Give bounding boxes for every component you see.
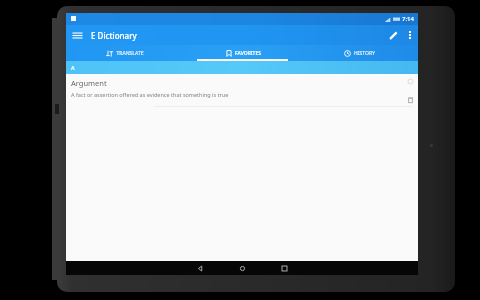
- staticText: HISTORY: [354, 50, 375, 57]
- staticText: Argument: [71, 78, 107, 88]
- staticText: A fact or assertion offered as evidence …: [71, 91, 229, 98]
- button[interactable]: HISTORY: [301, 45, 418, 61]
- button[interactable]: Recent apps: [272, 261, 296, 275]
- staticText: A: [71, 64, 75, 71]
- staticText: FAVORITES: [235, 50, 261, 57]
- staticText: 7:14: [402, 15, 414, 23]
- button[interactable]: Edit: [384, 26, 402, 44]
- button[interactable]: More options: [402, 27, 418, 43]
- button[interactable]: Back: [188, 261, 212, 275]
- button[interactable]: Argument: [66, 74, 418, 106]
- button[interactable]: Delete: [406, 95, 415, 104]
- button[interactable]: Home: [230, 261, 254, 275]
- staticText: TRANSLATE: [116, 50, 144, 57]
- staticText: E Dictionary: [91, 30, 137, 41]
- button[interactable]: Favorite: [406, 77, 415, 86]
- button[interactable]: TRANSLATE: [66, 45, 184, 61]
- button[interactable]: Open navigation drawer: [69, 27, 85, 43]
- button[interactable]: FAVORITES: [184, 45, 301, 61]
